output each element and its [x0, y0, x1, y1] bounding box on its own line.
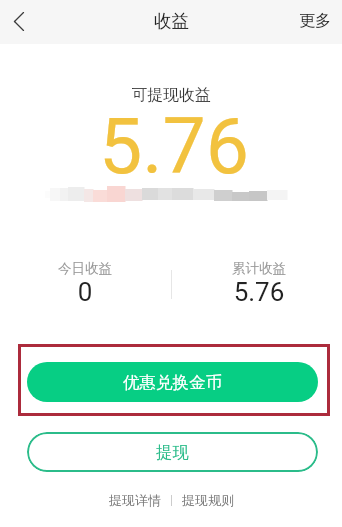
staticText: 0 — [35, 277, 135, 307]
staticText: 更多 — [299, 11, 331, 31]
button[interactable]: 提现 — [27, 432, 318, 472]
button[interactable]: 优惠兑换金币 — [27, 362, 318, 402]
staticText: 累计收益 — [209, 260, 309, 277]
staticText: 可提现收益 — [0, 85, 342, 105]
staticText: 5.76 — [3, 102, 342, 192]
staticText: 提现 — [156, 442, 189, 463]
staticText: 今日收益 — [35, 260, 135, 277]
staticText: 提现规则 — [182, 492, 234, 508]
staticText: 5.76 — [209, 277, 309, 307]
button[interactable]: 更多 — [287, 4, 342, 40]
button[interactable]: 提现规则 — [172, 489, 244, 511]
button[interactable]: 提现详情 — [99, 489, 171, 511]
staticText: 提现详情 — [109, 492, 161, 508]
staticText: 收益 — [154, 10, 189, 32]
staticText: 优惠兑换金币 — [123, 372, 222, 393]
button[interactable]: Back — [0, 3, 38, 41]
